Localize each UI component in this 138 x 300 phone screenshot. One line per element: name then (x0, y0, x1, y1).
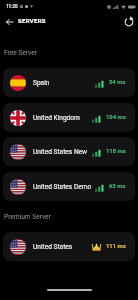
button[interactable]: United States New (3, 137, 135, 166)
staticText: Premium Server (4, 213, 51, 221)
staticText: United States Demo (33, 183, 92, 191)
staticText: United States (33, 243, 73, 251)
button[interactable]: United States (3, 232, 135, 261)
staticText: 118 ms (106, 148, 126, 155)
button[interactable]: Spain (3, 68, 135, 97)
staticText: 54 ms (109, 79, 126, 86)
staticText: 63 ms (109, 183, 126, 190)
staticText: SERVERS (18, 18, 46, 25)
button[interactable]: Refresh (122, 15, 135, 28)
button[interactable]: United States Demo (3, 172, 135, 201)
staticText: United Kingdom (33, 114, 80, 122)
staticText: 104 ms (106, 114, 126, 121)
staticText: Spain (33, 79, 50, 87)
staticText: 11:20 (6, 4, 18, 9)
staticText: United States New (33, 148, 88, 156)
button[interactable]: Back (4, 16, 15, 27)
button[interactable]: United Kingdom (3, 103, 135, 132)
staticText: Free Server (4, 49, 37, 57)
staticText: 111 ms (106, 243, 126, 250)
